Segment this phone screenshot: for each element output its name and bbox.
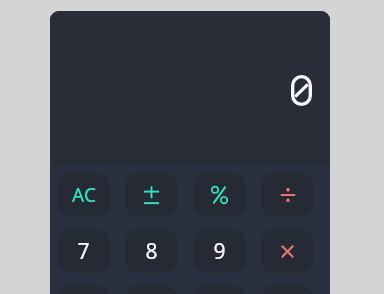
button[interactable]: Eight <box>125 229 178 273</box>
button[interactable]: Divide <box>261 173 314 217</box>
button[interactable]: Multiply <box>261 229 314 273</box>
staticText: AC <box>72 182 96 208</box>
button[interactable]: Seven <box>57 229 110 273</box>
button[interactable]: Four <box>57 285 110 294</box>
button[interactable]: Percent <box>193 173 246 217</box>
button[interactable]: All clear <box>57 173 110 217</box>
button[interactable]: Nine <box>193 229 246 273</box>
staticText: 7 <box>77 237 90 266</box>
staticText: 8 <box>145 237 158 266</box>
button[interactable]: Subtract <box>261 285 314 294</box>
button[interactable]: Plus minus sign <box>125 173 178 217</box>
button[interactable]: Five <box>125 285 178 294</box>
button[interactable]: Six <box>193 285 246 294</box>
staticText: 9 <box>213 237 226 266</box>
